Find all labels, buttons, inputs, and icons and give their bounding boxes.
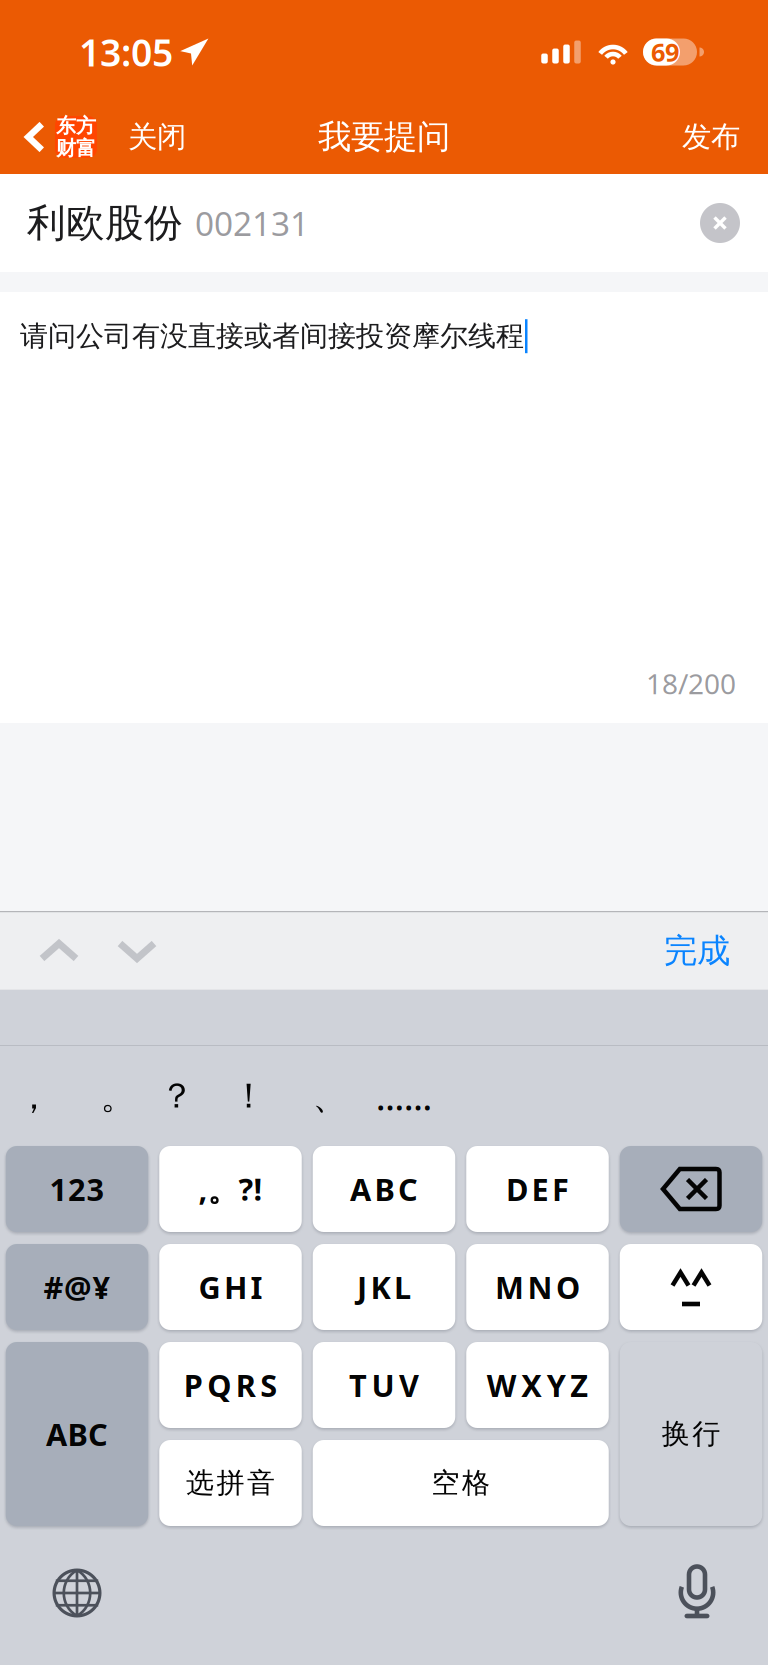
button[interactable]: DEF	[466, 1146, 609, 1232]
staticText: ,。?!	[198, 1169, 262, 1209]
staticText: ！	[231, 1075, 266, 1117]
staticText: PQRS	[184, 1365, 277, 1405]
staticText: 换行	[662, 1417, 720, 1451]
staticText: DEF	[506, 1169, 569, 1209]
button[interactable]: Dictation	[637, 1537, 757, 1649]
button[interactable]: JKL	[313, 1244, 455, 1330]
button[interactable]: ！	[217, 1046, 281, 1146]
staticText: 利欧股份	[27, 199, 183, 247]
staticText: ？	[159, 1075, 194, 1117]
staticText: 002131	[195, 201, 309, 245]
staticText: ABC	[46, 1414, 108, 1454]
button[interactable]: 、	[298, 1047, 362, 1147]
staticText: 财富	[56, 136, 96, 161]
button[interactable]: 关闭	[101, 94, 205, 180]
staticText: GHI	[198, 1267, 262, 1307]
staticText: 123	[49, 1169, 104, 1209]
staticText: 发布	[682, 119, 740, 155]
button[interactable]: 完成	[634, 912, 768, 989]
staticText: ……	[376, 1074, 432, 1120]
button[interactable]: 发布	[662, 94, 768, 180]
staticText: #@¥	[43, 1267, 110, 1307]
button[interactable]: Emoticons	[620, 1244, 762, 1330]
staticText: 空格	[431, 1466, 490, 1500]
button[interactable]: ,。?!	[159, 1146, 302, 1232]
button[interactable]: ……	[372, 1047, 436, 1147]
button[interactable]: ？	[145, 1046, 209, 1146]
button[interactable]: 选拼音	[159, 1440, 302, 1526]
staticText: 请问公司有没直接或者间接投资摩尔线程	[20, 319, 524, 353]
staticText: ABC	[350, 1169, 418, 1209]
button[interactable]: Back	[0, 94, 101, 180]
button[interactable]: MNO	[466, 1244, 609, 1330]
staticText: 关闭	[128, 119, 186, 155]
staticText: JKL	[357, 1267, 411, 1307]
button[interactable]: 空格	[313, 1440, 609, 1526]
button[interactable]: ABC	[6, 1342, 148, 1526]
button[interactable]: TUV	[313, 1342, 455, 1428]
staticText: 。	[100, 1076, 135, 1118]
staticText: WXYZ	[487, 1365, 588, 1405]
button[interactable]: 换行	[620, 1342, 762, 1526]
staticText: 13:05	[79, 27, 173, 77]
button[interactable]: ABC	[313, 1146, 455, 1232]
staticText: 东方	[56, 113, 96, 138]
button[interactable]: Switch keyboard	[17, 1537, 137, 1649]
staticText: ，	[16, 1076, 51, 1118]
button[interactable]: Clear	[700, 203, 740, 243]
button[interactable]: GHI	[159, 1244, 302, 1330]
staticText: 、	[312, 1076, 347, 1118]
staticText: MNO	[495, 1267, 580, 1307]
button[interactable]: WXYZ	[466, 1342, 609, 1428]
staticText: 选拼音	[186, 1466, 275, 1500]
button[interactable]: 。	[86, 1047, 150, 1147]
staticText: TUV	[349, 1365, 419, 1405]
button[interactable]: 123	[6, 1146, 148, 1232]
button[interactable]: Previous field	[20, 912, 98, 989]
button[interactable]: PQRS	[159, 1342, 302, 1428]
button[interactable]: #@¥	[6, 1244, 148, 1330]
staticText: 完成	[664, 930, 730, 971]
button[interactable]: Next field	[98, 912, 176, 989]
staticText: 18/200	[646, 665, 736, 702]
staticText: 我要提问	[318, 116, 450, 157]
staticText: 69	[651, 35, 679, 69]
button[interactable]: ，	[2, 1047, 66, 1147]
button[interactable]: Delete	[620, 1146, 762, 1232]
